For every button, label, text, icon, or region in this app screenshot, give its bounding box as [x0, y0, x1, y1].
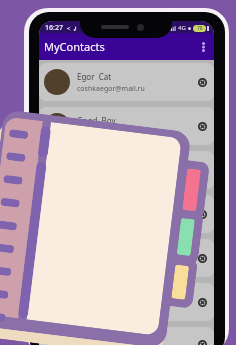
staticText: Egor Cat	[77, 71, 112, 82]
staticText: 78	[197, 25, 203, 32]
button[interactable]: Good Boy	[39, 107, 214, 145]
button[interactable]: Delete contact	[39, 327, 214, 345]
staticText: coshkaegor@mail.ru	[77, 84, 145, 94]
button[interactable]: Delete contact	[39, 151, 214, 189]
button[interactable]: Delete contact	[39, 195, 214, 233]
staticText: gooddog@mail.ru	[77, 128, 137, 138]
button[interactable]: Delete contact	[194, 118, 210, 134]
button[interactable]: Delete contact	[39, 239, 214, 277]
button[interactable]: Delete contact	[39, 283, 214, 321]
button[interactable]: Egor Cat	[39, 63, 214, 101]
button[interactable]: Delete contact	[194, 294, 210, 310]
button[interactable]: Delete contact	[194, 162, 210, 178]
staticText: MyContacts	[44, 39, 105, 54]
staticText: 4G	[178, 24, 186, 32]
button[interactable]: More options	[194, 38, 212, 56]
staticText: 16:27	[45, 23, 63, 33]
button[interactable]: Delete contact	[194, 336, 210, 345]
button[interactable]: Delete contact	[194, 250, 210, 266]
button[interactable]: Delete contact	[194, 206, 210, 222]
button[interactable]: Delete contact	[194, 74, 210, 90]
staticText: Good Boy	[77, 115, 116, 126]
